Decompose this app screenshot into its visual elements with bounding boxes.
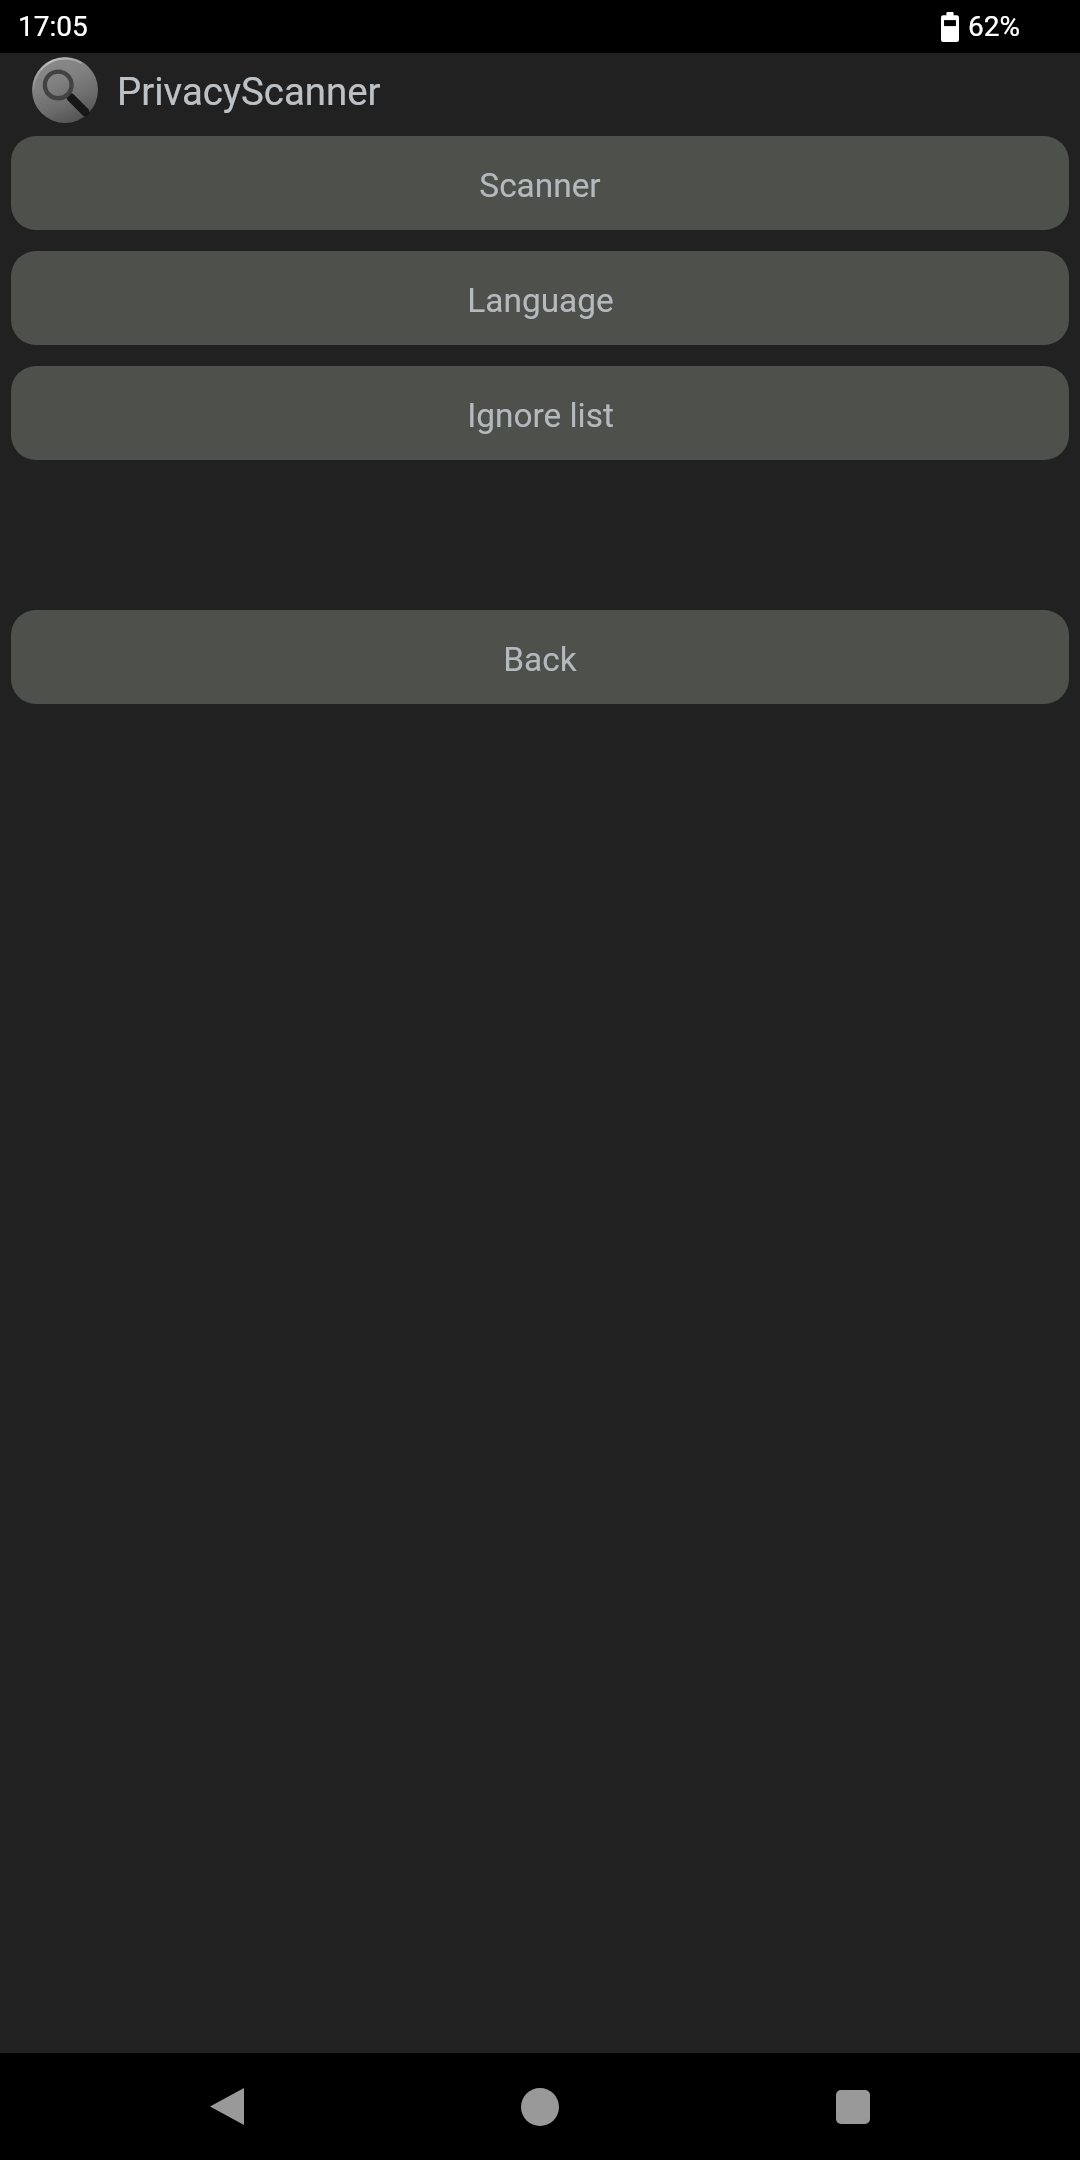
staticText: Language	[467, 281, 614, 320]
staticText: 62%	[968, 10, 1020, 43]
button[interactable]: Ignore list	[11, 366, 1069, 460]
staticText: 17:05	[18, 10, 88, 43]
staticText: Scanner	[479, 166, 601, 205]
staticText: Ignore list	[467, 396, 614, 435]
button[interactable]: Back	[11, 610, 1069, 704]
button[interactable]: Language	[11, 251, 1069, 345]
button[interactable]: PrivacyScanner app icon	[32, 57, 98, 123]
button[interactable]: Back	[160, 2053, 294, 2160]
button[interactable]: Scanner	[11, 136, 1069, 230]
staticText: PrivacyScanner	[117, 69, 381, 114]
button[interactable]: Home	[473, 2053, 607, 2160]
button[interactable]: Recent apps	[786, 2053, 920, 2160]
staticText: Back	[503, 640, 577, 679]
